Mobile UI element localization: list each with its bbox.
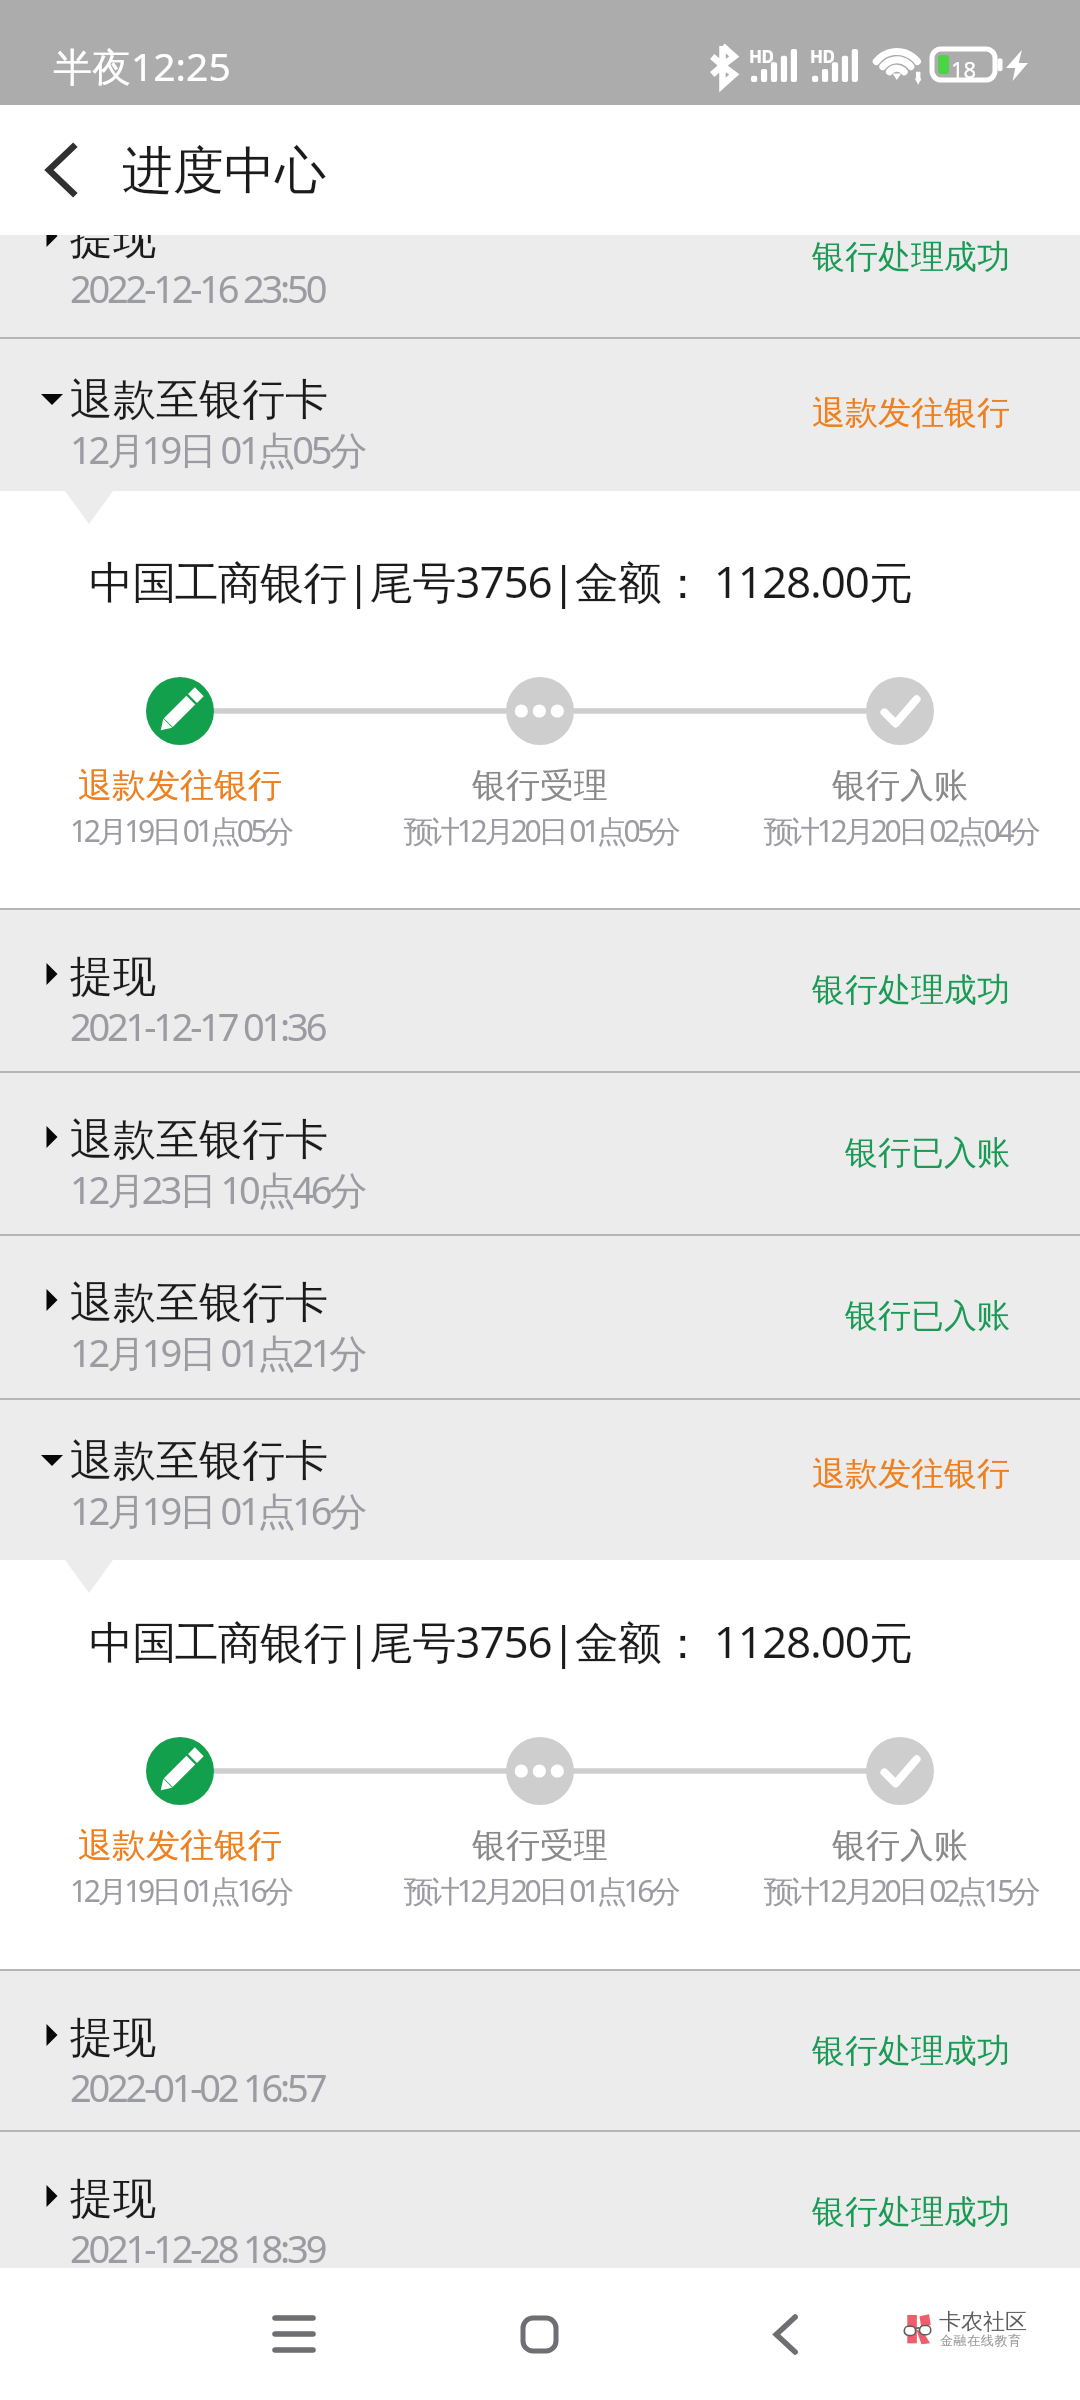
staticText: 中国工商银行|尾号3756|金额： 1128.00元 <box>89 551 912 611</box>
staticText: 12月19日 01点05分 <box>70 810 291 851</box>
staticText: 预计12月20日 02点04分 <box>763 810 1038 851</box>
button[interactable]: 退款至银行卡 <box>0 1400 1080 1560</box>
staticText: 退款至银行卡 <box>70 373 328 427</box>
staticText: 退款至银行卡 <box>70 1276 328 1330</box>
staticText: 退款发往银行 <box>78 1824 282 1867</box>
staticText: 退款发往银行 <box>78 764 282 807</box>
button[interactable]: Back <box>6 105 116 235</box>
staticText: 银行处理成功 <box>812 236 1010 278</box>
staticText: 进度中心 <box>122 139 326 203</box>
staticText: 退款发往银行 <box>812 1453 1010 1495</box>
staticText: 提现 <box>70 2011 156 2065</box>
staticText: HD <box>810 45 835 68</box>
staticText: 半夜12:25 <box>53 39 231 92</box>
staticText: 银行已入账 <box>845 1295 1010 1337</box>
staticText: 2022-12-16 23:50 <box>70 262 325 314</box>
staticText: 银行受理 <box>472 764 608 807</box>
button[interactable]: 提现 <box>0 910 1080 1071</box>
button[interactable]: 退款至银行卡 <box>0 1073 1080 1234</box>
staticText: 预计12月20日 01点16分 <box>403 1870 678 1911</box>
staticText: 2022-01-02 16:57 <box>70 2061 325 2113</box>
staticText: 银行入账 <box>832 764 968 807</box>
staticText: 提现 <box>70 2172 156 2226</box>
staticText: 退款至银行卡 <box>70 1113 328 1167</box>
staticText: 预计12月20日 01点05分 <box>403 810 678 851</box>
staticText: 提现 <box>70 950 156 1004</box>
staticText: 银行已入账 <box>845 1132 1010 1174</box>
button[interactable]: 退款至银行卡 <box>0 1236 1080 1398</box>
staticText: 退款发往银行 <box>812 392 1010 434</box>
staticText: 银行入账 <box>832 1824 968 1867</box>
staticText: HD <box>749 45 774 68</box>
button[interactable]: 退款至银行卡 <box>0 339 1080 491</box>
button[interactable]: Recent apps <box>239 2275 349 2393</box>
button[interactable]: 提现 <box>0 2132 1080 2268</box>
button[interactable]: 提现 <box>0 235 1080 337</box>
staticText: 卡农社区 <box>939 2308 1027 2336</box>
button[interactable]: 提现 <box>0 1971 1080 2130</box>
staticText: 银行处理成功 <box>812 969 1010 1011</box>
button[interactable]: Back <box>730 2275 840 2393</box>
staticText: 12月23日 10点46分 <box>70 1163 365 1215</box>
staticText: 12月19日 01点05分 <box>70 423 365 475</box>
staticText: 提现 <box>70 235 156 266</box>
staticText: 银行处理成功 <box>812 2191 1010 2233</box>
staticText: 12月19日 01点16分 <box>70 1484 365 1536</box>
staticText: 金融在线教育 <box>940 2332 1022 2348</box>
staticText: 银行受理 <box>472 1824 608 1867</box>
staticText: 2021-12-17 01:36 <box>70 1000 325 1052</box>
staticText: 2021-12-28 18:39 <box>70 2222 325 2268</box>
staticText: 中国工商银行|尾号3756|金额： 1128.00元 <box>89 1611 912 1671</box>
staticText: 银行处理成功 <box>812 2030 1010 2072</box>
staticText: 12月19日 01点21分 <box>70 1326 365 1378</box>
staticText: 预计12月20日 02点15分 <box>763 1870 1038 1911</box>
staticText: 12月19日 01点16分 <box>70 1870 291 1911</box>
staticText: 退款至银行卡 <box>70 1434 328 1488</box>
staticText: 18 <box>951 54 977 84</box>
button[interactable]: Home <box>484 2275 594 2393</box>
